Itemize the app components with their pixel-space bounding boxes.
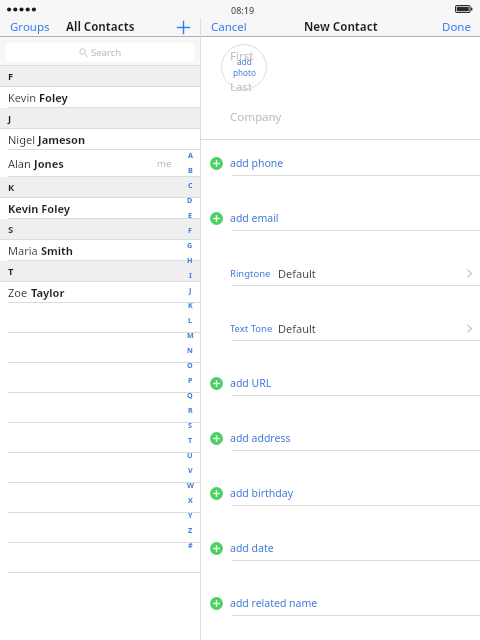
staticText: add email [230, 211, 279, 225]
button[interactable]: Kevin Foley [0, 198, 200, 219]
staticText: Smith [41, 243, 73, 258]
staticText: Ringtone [230, 267, 271, 280]
staticText: Y [188, 510, 193, 520]
staticText: Jones [34, 156, 64, 171]
staticText: G [187, 240, 193, 250]
staticText: add birthday [230, 486, 294, 500]
staticText: X [188, 495, 193, 505]
staticText: Zoe [8, 285, 31, 300]
staticText: Z [188, 525, 193, 535]
staticText: S [188, 420, 192, 430]
staticText: Last [230, 79, 253, 95]
staticText: I [189, 270, 192, 280]
staticText: H [187, 255, 193, 265]
button[interactable]: Last [230, 76, 478, 98]
button[interactable]: Maria [0, 240, 200, 261]
button[interactable]: Add contact [170, 18, 196, 36]
staticText: M [187, 330, 194, 340]
staticText: add URL [230, 376, 272, 390]
button[interactable]: Groups [3, 18, 57, 36]
staticText: 08:19 [231, 4, 255, 16]
button[interactable]: Alan [0, 150, 200, 177]
button[interactable]: add phone [201, 150, 480, 176]
staticText: Kevin [8, 90, 39, 105]
staticText: photo [233, 67, 256, 78]
staticText: add phone [230, 156, 284, 170]
staticText: O [187, 360, 193, 370]
staticText: T [8, 265, 14, 278]
button[interactable]: Alphabet index [183, 147, 197, 552]
staticText: F [8, 70, 14, 83]
staticText: Foley [39, 90, 68, 105]
staticText: L [188, 315, 193, 325]
button[interactable]: add date [201, 535, 480, 561]
staticText: Kevin Foley [8, 201, 71, 216]
staticText: U [187, 450, 193, 460]
staticText: R [188, 405, 193, 415]
button[interactable]: Add photo [221, 44, 267, 90]
staticText: C [188, 180, 193, 190]
button[interactable]: Zoe [0, 282, 200, 303]
staticText: V [188, 465, 193, 475]
staticText: # [188, 540, 193, 550]
staticText: Taylor [31, 285, 65, 300]
button[interactable]: Text Tone [201, 315, 480, 341]
staticText: Default [278, 321, 316, 336]
staticText: add address [230, 431, 291, 445]
staticText: add [237, 56, 252, 67]
button[interactable]: First [230, 45, 478, 67]
staticText: S [8, 223, 14, 236]
staticText: F [188, 225, 192, 235]
staticText: Cancel [211, 19, 247, 35]
staticText: J [8, 112, 12, 125]
button[interactable]: add email [201, 205, 480, 231]
staticText: Search [91, 46, 122, 59]
staticText: T [188, 435, 193, 445]
staticText: D [187, 195, 193, 205]
staticText: Groups [10, 19, 50, 35]
staticText: New Contact [304, 19, 378, 35]
staticText: All Contacts [66, 19, 135, 35]
staticText: Jameson [38, 132, 86, 147]
staticText: P [188, 375, 193, 385]
button[interactable]: Ringtone [201, 260, 480, 286]
staticText: add date [230, 541, 274, 555]
staticText: First [230, 48, 254, 64]
button[interactable]: add address [201, 425, 480, 451]
button[interactable]: Cancel [204, 18, 254, 36]
staticText: Done [442, 19, 471, 35]
button[interactable]: Nigel [0, 129, 200, 150]
staticText: Alan [8, 156, 34, 171]
staticText: me [157, 157, 172, 170]
staticText: B [188, 165, 193, 175]
staticText: E [188, 210, 193, 220]
staticText: add related name [230, 596, 318, 610]
button[interactable]: Kevin [0, 87, 200, 108]
staticText: A [188, 150, 193, 160]
staticText: Q [187, 390, 193, 400]
staticText: N [187, 345, 193, 355]
button[interactable]: Done [433, 18, 480, 36]
button[interactable]: add related name [201, 590, 480, 616]
staticText: K [8, 181, 15, 194]
staticText: Text Tone [230, 322, 273, 335]
staticText: Maria [8, 243, 41, 258]
button[interactable]: add URL [201, 370, 480, 396]
button[interactable]: Company [230, 106, 478, 128]
button[interactable]: Search [6, 43, 194, 62]
staticText: K [188, 300, 193, 310]
staticText: Company [230, 109, 282, 125]
staticText: J [189, 285, 192, 295]
staticText: Nigel [8, 132, 38, 147]
button[interactable]: add birthday [201, 480, 480, 506]
staticText: W [187, 480, 194, 490]
staticText: Default [278, 266, 316, 281]
